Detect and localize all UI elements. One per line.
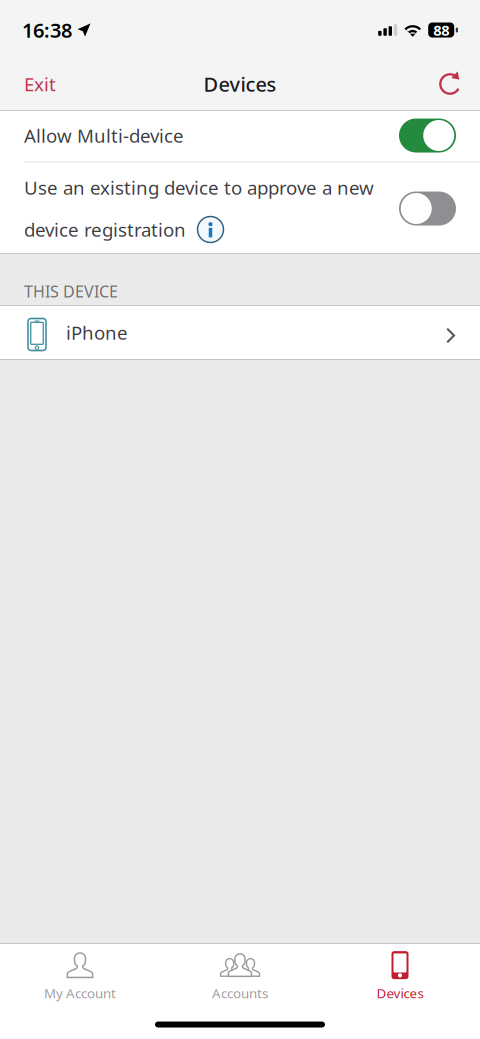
staticText: device registration — [24, 217, 186, 242]
staticText: Allow Multi-device — [24, 123, 184, 148]
staticText: Accounts — [212, 984, 268, 1002]
button[interactable]: More information — [197, 216, 224, 243]
staticText: 88 — [433, 20, 449, 40]
button[interactable]: Refresh — [416, 59, 480, 109]
button[interactable]: iPhone — [0, 306, 480, 359]
staticText: Exit — [24, 72, 56, 96]
staticText: Devices — [376, 984, 423, 1002]
staticText: iPhone — [66, 320, 128, 345]
staticText: 16:38 — [22, 17, 72, 43]
staticText: My Account — [44, 984, 116, 1002]
button[interactable]: My Account — [0, 945, 160, 1007]
button[interactable]: Exit — [0, 59, 80, 109]
button[interactable]: Devices — [320, 945, 480, 1007]
staticText: Devices — [203, 71, 276, 97]
button[interactable]: Use an existing device to approve a new … — [399, 191, 456, 225]
button[interactable]: Allow Multi-device — [399, 118, 456, 152]
staticText: THIS DEVICE — [24, 281, 118, 302]
staticText: Use an existing device to approve a new — [24, 175, 374, 200]
button[interactable]: Accounts — [160, 945, 320, 1007]
